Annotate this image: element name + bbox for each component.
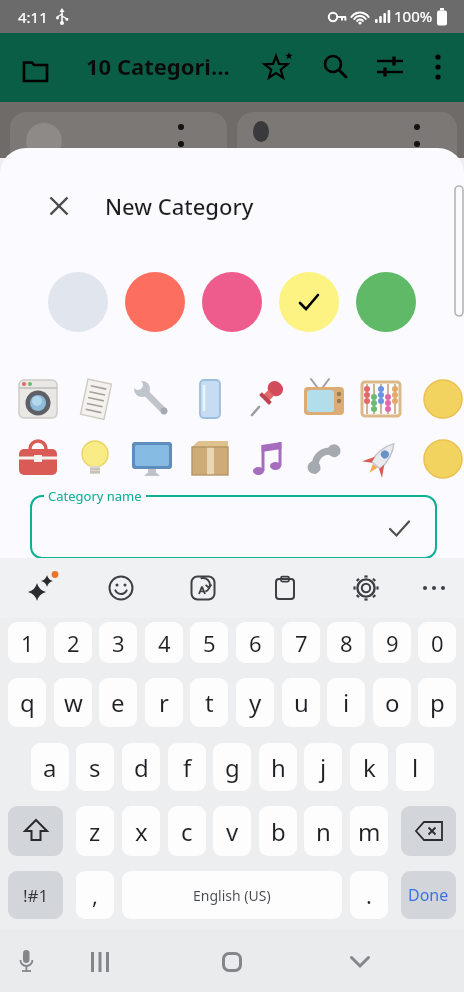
button[interactable]: 5	[190, 622, 228, 663]
button[interactable]	[187, 376, 233, 422]
staticText: k	[363, 751, 376, 784]
staticText: l	[412, 751, 419, 784]
staticText: v	[226, 815, 239, 848]
button[interactable]	[356, 272, 416, 332]
button[interactable]: Done	[401, 871, 456, 919]
button[interactable]	[418, 45, 458, 89]
button[interactable]: h	[259, 743, 297, 791]
button[interactable]	[15, 376, 61, 422]
button[interactable]: b	[259, 806, 297, 856]
button[interactable]	[401, 806, 456, 856]
button[interactable]	[30, 495, 437, 558]
button[interactable]	[244, 376, 290, 422]
button[interactable]	[48, 272, 108, 332]
button[interactable]: m	[350, 806, 388, 856]
button[interactable]: 2	[54, 622, 92, 663]
button[interactable]: e	[99, 678, 137, 727]
button[interactable]: 9	[373, 622, 411, 663]
staticText: c	[181, 815, 193, 848]
button[interactable]: o	[373, 678, 411, 727]
button[interactable]	[256, 45, 300, 89]
button[interactable]: 7	[282, 622, 320, 663]
button[interactable]	[340, 944, 380, 980]
button[interactable]: x	[122, 806, 160, 856]
button[interactable]	[129, 376, 175, 422]
button[interactable]	[414, 566, 454, 610]
button[interactable]: i	[327, 678, 365, 727]
staticText: 6	[249, 628, 262, 658]
staticText: h	[271, 751, 286, 784]
staticText: Category name	[48, 487, 142, 505]
button[interactable]: y	[236, 678, 274, 727]
button[interactable]: 3	[99, 622, 137, 663]
staticText: ,	[92, 880, 98, 910]
button[interactable]: s	[76, 743, 114, 791]
button[interactable]: v	[213, 806, 251, 856]
button[interactable]	[80, 944, 120, 980]
button[interactable]: l	[396, 743, 434, 791]
staticText: 100%	[394, 6, 433, 26]
button[interactable]: c	[168, 806, 206, 856]
button[interactable]: n	[304, 806, 342, 856]
button[interactable]	[129, 436, 175, 482]
button[interactable]: w	[54, 678, 92, 727]
button[interactable]: !#1	[8, 871, 63, 919]
button[interactable]: ,	[76, 871, 114, 919]
button[interactable]	[358, 436, 404, 482]
button[interactable]: f	[168, 743, 206, 791]
button[interactable]	[8, 806, 63, 856]
staticText: b	[271, 815, 286, 848]
button[interactable]	[263, 566, 307, 610]
button[interactable]: k	[350, 743, 388, 791]
button[interactable]	[38, 185, 80, 227]
button[interactable]	[358, 376, 404, 422]
button[interactable]: 4	[145, 622, 183, 663]
staticText: u	[294, 686, 309, 719]
button[interactable]	[72, 376, 118, 422]
button[interactable]: j	[304, 743, 342, 791]
button[interactable]	[15, 436, 61, 482]
staticText: 1	[21, 628, 34, 658]
button[interactable]	[301, 436, 347, 482]
button[interactable]	[344, 566, 388, 610]
button[interactable]	[244, 436, 290, 482]
button[interactable]: English (US)	[122, 871, 342, 919]
button[interactable]: .	[350, 871, 388, 919]
button[interactable]: a	[31, 743, 69, 791]
button[interactable]: g	[213, 743, 251, 791]
staticText: o	[385, 686, 400, 719]
button[interactable]	[212, 944, 252, 980]
button[interactable]: q	[8, 678, 46, 727]
staticText: g	[225, 751, 240, 784]
button[interactable]	[368, 45, 412, 89]
button[interactable]: 8	[327, 622, 365, 663]
button[interactable]: t	[190, 678, 228, 727]
button[interactable]	[314, 45, 358, 89]
button[interactable]	[420, 376, 464, 422]
staticText: English (US)	[193, 886, 271, 905]
button[interactable]	[187, 436, 233, 482]
button[interactable]	[301, 376, 347, 422]
button[interactable]: z	[76, 806, 114, 856]
button[interactable]: 6	[236, 622, 274, 663]
button[interactable]	[181, 566, 225, 610]
button[interactable]	[279, 272, 339, 332]
button[interactable]: 0	[418, 622, 456, 663]
button[interactable]	[12, 56, 58, 92]
button[interactable]: 1	[8, 622, 46, 663]
button[interactable]: r	[145, 678, 183, 727]
button[interactable]	[125, 272, 185, 332]
button[interactable]	[8, 944, 44, 980]
button[interactable]	[99, 566, 143, 610]
button[interactable]	[420, 436, 464, 482]
button[interactable]: p	[418, 678, 456, 727]
button[interactable]	[202, 272, 262, 332]
button[interactable]	[19, 566, 63, 610]
button[interactable]	[72, 436, 118, 482]
staticText: p	[430, 686, 445, 719]
button[interactable]: d	[122, 743, 160, 791]
staticText: 2	[67, 628, 80, 658]
staticText: 0	[431, 628, 444, 658]
staticText: 4	[158, 628, 171, 658]
button[interactable]: u	[282, 678, 320, 727]
